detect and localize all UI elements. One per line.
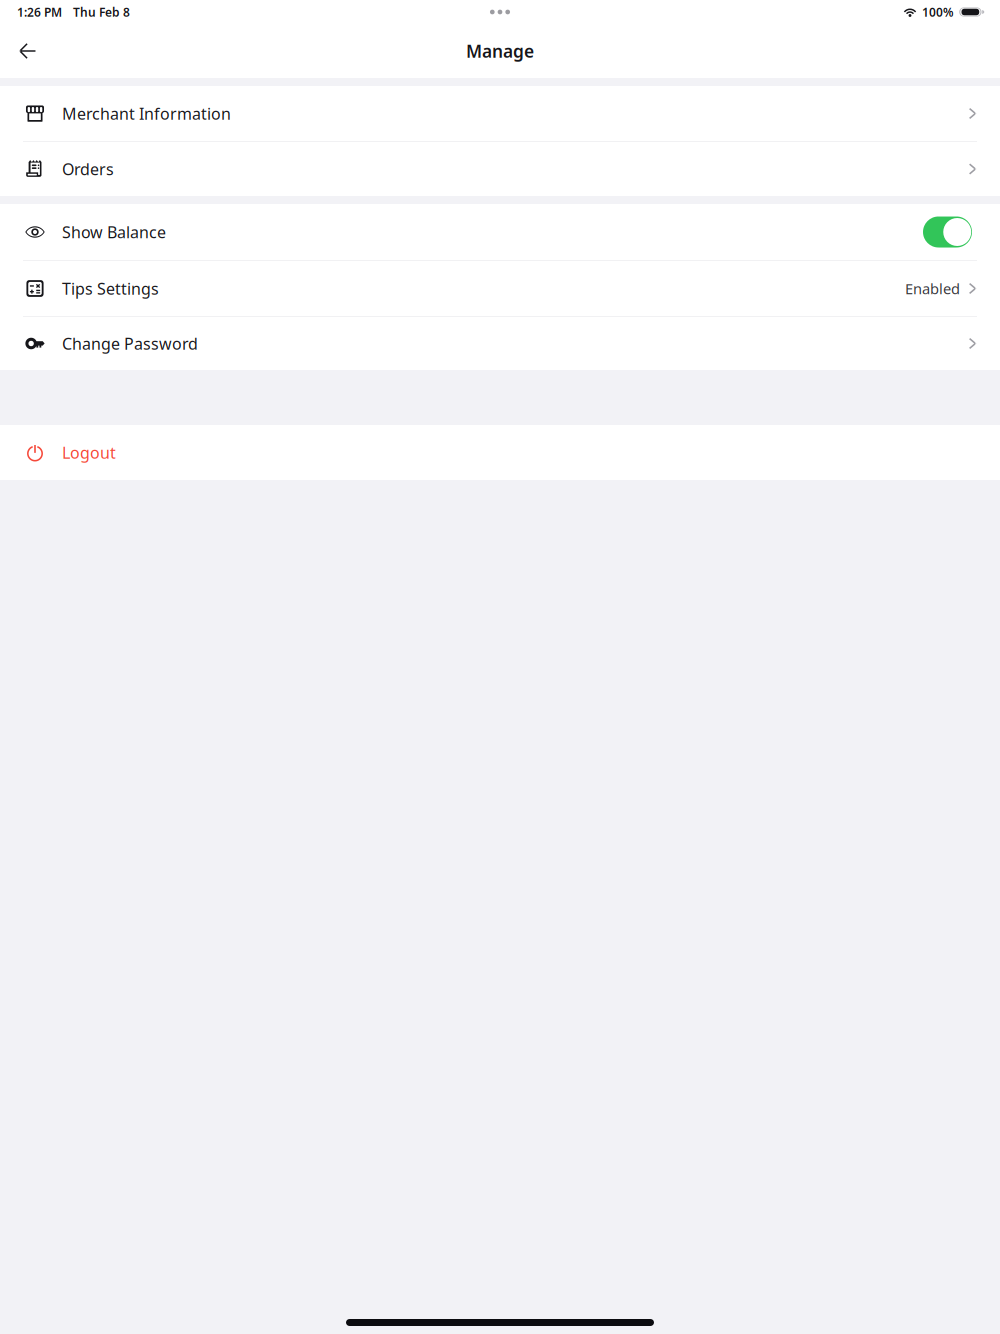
- button[interactable]: Merchant Information: [0, 86, 1000, 141]
- staticText: Orders: [62, 158, 114, 180]
- button[interactable]: Show Balance: [0, 204, 1000, 260]
- staticText: Merchant Information: [62, 103, 231, 124]
- staticText: 1:26 PM: [17, 4, 62, 20]
- staticText: 100%: [922, 4, 954, 20]
- staticText: Tips Settings: [62, 278, 159, 299]
- staticText: Manage: [466, 39, 534, 62]
- staticText: Show Balance: [62, 221, 166, 243]
- button[interactable]: Change Password: [0, 317, 1000, 370]
- button[interactable]: Logout: [0, 425, 1000, 480]
- staticText: Change Password: [62, 333, 198, 354]
- staticText: Enabled: [905, 279, 960, 298]
- staticText: Logout: [62, 442, 116, 463]
- button[interactable]: Back: [0, 30, 53, 72]
- button[interactable]: Orders: [0, 142, 1000, 196]
- staticText: Thu Feb 8: [73, 4, 130, 20]
- button[interactable]: Tips Settings: [0, 261, 1000, 316]
